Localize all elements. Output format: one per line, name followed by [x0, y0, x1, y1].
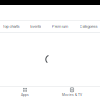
button[interactable]: Top charts: [2, 24, 20, 29]
staticText: Categories: [79, 24, 97, 29]
button[interactable]: Premium: [51, 24, 69, 29]
button[interactable]: Categories: [79, 24, 98, 29]
staticText: Movies & TV: [62, 93, 82, 97]
staticText: Apps: [21, 93, 29, 97]
button[interactable]: Apps: [0, 88, 50, 99]
button[interactable]: Movies & TV: [50, 88, 94, 99]
staticText: Premium: [52, 24, 69, 29]
staticText: Top charts: [2, 24, 19, 29]
button[interactable]: Events: [30, 24, 42, 29]
staticText: Events: [30, 24, 41, 29]
